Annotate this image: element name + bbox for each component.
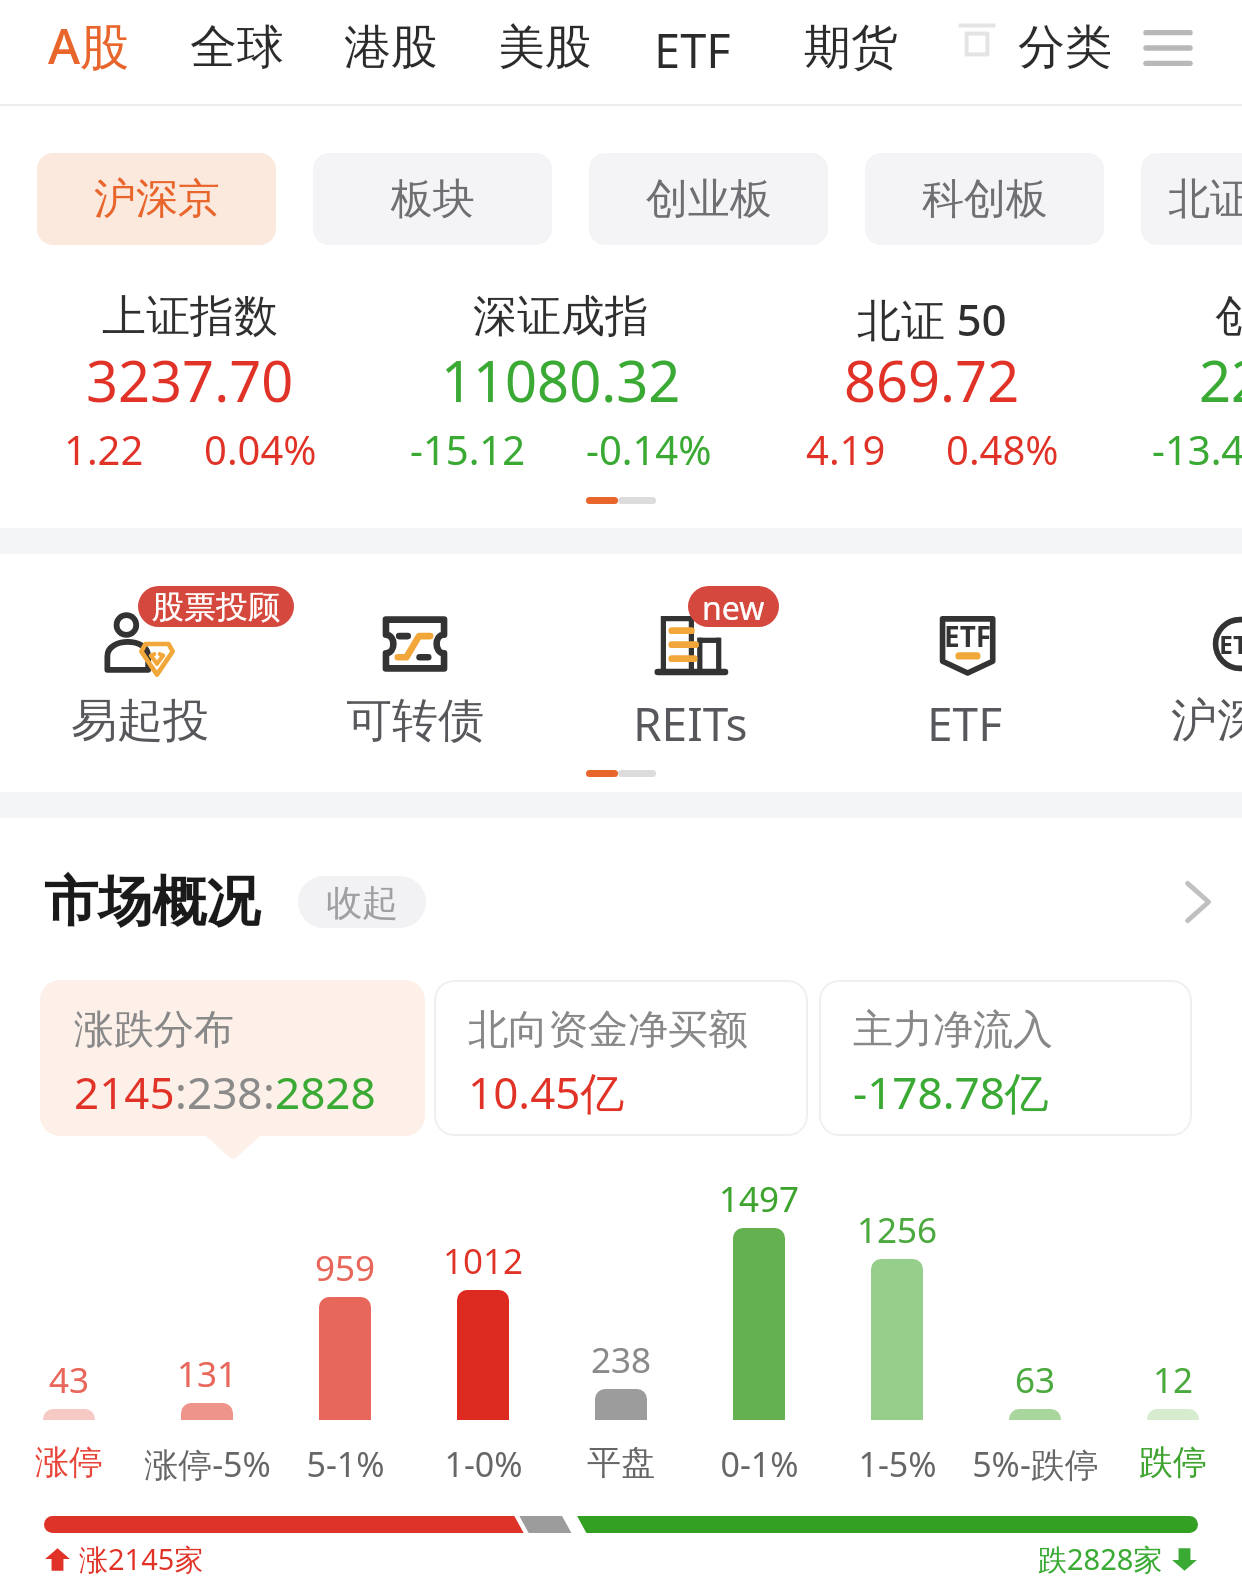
staticText: 分类: [1018, 18, 1112, 77]
button[interactable]: 可转债: [305, 606, 525, 771]
staticText: :: [175, 1062, 187, 1122]
button[interactable]: More: [1166, 872, 1226, 932]
staticText: 期货: [804, 18, 898, 77]
staticText: REITs: [633, 692, 748, 755]
button[interactable]: 沪深京: [37, 153, 276, 245]
staticText: 上证指数: [102, 289, 278, 344]
button[interactable]: REITs: [580, 606, 800, 771]
staticText: 美股: [498, 18, 592, 77]
staticText: 3237.70: [86, 342, 294, 418]
staticText: 869.72: [844, 342, 1020, 418]
staticText: 股票投顾: [152, 587, 280, 627]
staticText: 科创板: [922, 173, 1048, 226]
staticText: 5-1%: [306, 1441, 385, 1487]
button[interactable]: 全球: [190, 0, 284, 104]
button[interactable]: 上证指数: [4, 286, 376, 486]
button[interactable]: Tag: [957, 20, 997, 60]
button[interactable]: ETF: [1130, 606, 1242, 771]
staticText: -13.45: [1152, 422, 1242, 476]
staticText: 2245.43: [1199, 342, 1242, 418]
button[interactable]: 131: [138, 1350, 276, 1402]
staticText: 0-1%: [720, 1441, 799, 1487]
button[interactable]: 涨跌分布: [40, 980, 425, 1136]
button[interactable]: 深证成指: [375, 286, 747, 486]
button[interactable]: 北证: [1141, 153, 1242, 245]
staticText: 63: [1015, 1356, 1056, 1404]
staticText: 11080.32: [441, 342, 681, 418]
staticText: new: [702, 586, 765, 627]
staticText: :: [263, 1062, 275, 1122]
staticText: 沪深股: [1171, 692, 1242, 750]
button[interactable]: 易起投: [30, 606, 250, 771]
staticText: 易起投: [71, 692, 209, 750]
button[interactable]: 创业板: [589, 153, 828, 245]
staticText: 涨跌分布: [74, 1004, 234, 1054]
staticText: 238: [591, 1336, 652, 1384]
staticText: 1.22: [64, 422, 144, 476]
staticText: 1-5%: [858, 1441, 937, 1487]
button[interactable]: 1012: [414, 1237, 552, 1289]
staticText: 收起: [326, 880, 398, 925]
staticText: 1497: [719, 1175, 800, 1223]
staticText: 深证成指: [473, 289, 649, 344]
button[interactable]: ETF: [654, 0, 731, 104]
staticText: 港股: [344, 18, 438, 77]
button[interactable]: A股: [48, 0, 130, 104]
staticText: 涨停-5%: [144, 1441, 271, 1487]
staticText: 创业板指: [1215, 289, 1242, 344]
staticText: ETF: [944, 617, 992, 655]
staticText: A股: [48, 12, 130, 79]
staticText: 涨2145家: [79, 1539, 204, 1579]
staticText: 43: [49, 1356, 90, 1404]
staticText: 0.48%: [946, 422, 1059, 476]
staticText: 2828: [275, 1062, 376, 1122]
button[interactable]: 港股: [344, 0, 438, 104]
staticText: 238: [187, 1062, 263, 1122]
staticText: -0.14%: [586, 422, 712, 476]
staticText: 0.04%: [204, 422, 317, 476]
staticText: 10.45亿: [468, 1062, 625, 1122]
button[interactable]: 期货: [804, 0, 898, 104]
staticText: 12: [1153, 1356, 1194, 1404]
button[interactable]: 12: [1104, 1356, 1242, 1408]
button[interactable]: 板块: [313, 153, 552, 245]
staticText: 创业板: [646, 173, 772, 226]
staticText: 131: [177, 1350, 238, 1398]
staticText: 涨停: [35, 1441, 103, 1484]
button[interactable]: 科创板: [865, 153, 1104, 245]
button[interactable]: 北向资金净买额: [434, 980, 808, 1136]
staticText: -15.12: [410, 422, 526, 476]
staticText: ETF: [1219, 627, 1242, 661]
button[interactable]: ETF: [855, 606, 1075, 771]
staticText: 5%-跌停: [972, 1441, 1099, 1487]
staticText: 跌2828家: [1038, 1539, 1163, 1579]
staticText: -178.78亿: [853, 1062, 1049, 1122]
staticText: 北证 50: [857, 289, 1007, 349]
button[interactable]: 北证 50: [746, 286, 1118, 486]
staticText: 1256: [857, 1206, 938, 1254]
staticText: 北证: [1168, 173, 1242, 226]
staticText: 平盘: [587, 1441, 655, 1484]
button[interactable]: Menu: [1144, 24, 1192, 72]
button[interactable]: 1497: [690, 1175, 828, 1227]
button[interactable]: 63: [966, 1356, 1104, 1408]
staticText: ETF: [927, 692, 1003, 755]
staticText: 4.19: [806, 422, 886, 476]
staticText: 可转债: [346, 692, 484, 750]
staticText: 1-0%: [444, 1441, 523, 1487]
button[interactable]: 分类: [1018, 18, 1112, 77]
staticText: 市场概况: [44, 868, 260, 936]
staticText: 1012: [443, 1237, 524, 1285]
button[interactable]: 1256: [828, 1206, 966, 1258]
staticText: 主力净流入: [853, 1004, 1053, 1054]
staticText: 板块: [391, 173, 475, 226]
button[interactable]: 238: [552, 1336, 690, 1388]
button[interactable]: 创业板指: [1117, 286, 1242, 486]
button[interactable]: 959: [276, 1244, 414, 1296]
button[interactable]: 43: [0, 1356, 138, 1408]
staticText: 959: [315, 1244, 376, 1292]
button[interactable]: 美股: [498, 0, 592, 104]
staticText: 2145: [74, 1062, 175, 1122]
button[interactable]: 收起: [298, 876, 426, 928]
button[interactable]: 主力净流入: [819, 980, 1192, 1136]
